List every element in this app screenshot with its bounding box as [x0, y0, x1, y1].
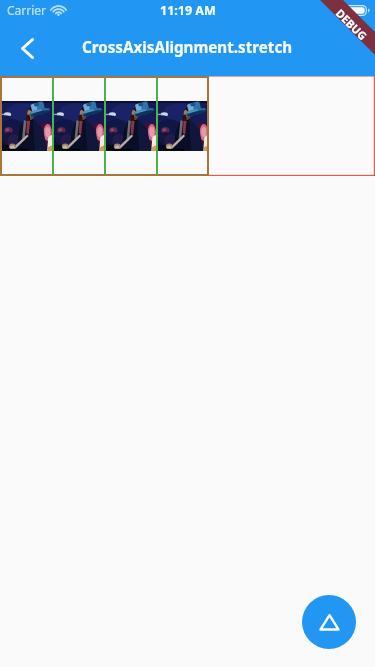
button[interactable]: Play [302, 595, 356, 649]
staticText: Carrier [7, 2, 47, 18]
staticText: CrossAxisAlignment.stretch [82, 37, 293, 58]
staticText: DEBUG [333, 6, 370, 43]
button[interactable]: Back [5, 26, 49, 70]
staticText: 11:19 AM [160, 2, 216, 19]
